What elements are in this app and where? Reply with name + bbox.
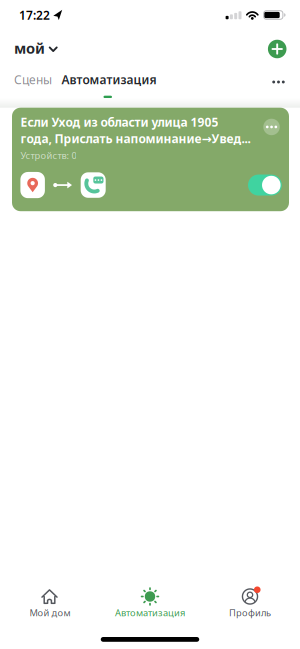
staticText: Устройств: 0 (20, 149, 76, 161)
staticText: Профиль (229, 606, 271, 619)
button[interactable]: Если Уход из области улица 1905 (12, 108, 289, 211)
staticText: 17:22 (19, 7, 50, 23)
staticText: Автоматизация (115, 606, 185, 619)
button[interactable] (263, 119, 280, 135)
button[interactable]: Автоматизация (115, 588, 185, 619)
button[interactable] (248, 175, 282, 196)
button[interactable] (269, 75, 287, 89)
button[interactable]: мой (14, 38, 58, 58)
staticText: года, Прислать напоминание→Увед... (20, 131, 250, 146)
staticText: Мой дом (29, 606, 70, 619)
staticText: Если Уход из области улица 1905 (20, 114, 218, 130)
button[interactable] (268, 40, 286, 58)
staticText: мой (14, 38, 45, 58)
button[interactable]: Сцены (14, 71, 52, 87)
staticText: Автоматизация (61, 71, 156, 87)
staticText: Сцены (14, 71, 52, 87)
button[interactable]: Мой дом (29, 588, 70, 619)
button[interactable]: Профиль (229, 588, 271, 619)
button[interactable]: Автоматизация (61, 71, 156, 87)
